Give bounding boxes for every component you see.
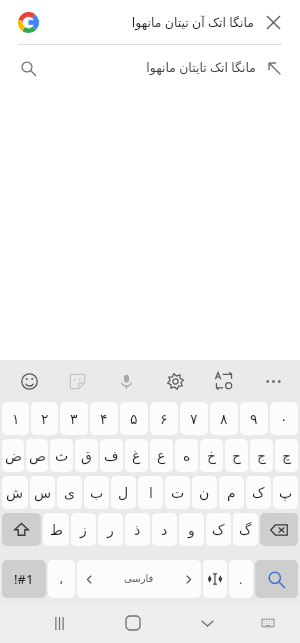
- button[interactable]: ر: [98, 513, 123, 546]
- button[interactable]: ح: [225, 439, 248, 472]
- staticText: .: [239, 570, 243, 588]
- staticText: س: [34, 485, 52, 501]
- button[interactable]: ۷: [180, 402, 208, 435]
- button[interactable]: ز: [71, 513, 96, 546]
- staticText: ر: [107, 522, 114, 538]
- button[interactable]: ۴: [90, 402, 118, 435]
- staticText: ح: [232, 448, 242, 464]
- button[interactable]: ۵: [120, 402, 148, 435]
- staticText: م: [227, 485, 236, 501]
- button[interactable]: ۸: [210, 402, 238, 435]
- staticText: چ: [282, 448, 292, 464]
- staticText: ج: [257, 448, 267, 464]
- button[interactable]: Space: [77, 560, 201, 598]
- staticText: ن: [199, 485, 210, 501]
- staticText: ل: [118, 485, 129, 501]
- button[interactable]: ۹: [240, 402, 268, 435]
- button[interactable]: Cursor control: [203, 560, 227, 598]
- button[interactable]: ۶: [150, 402, 178, 435]
- staticText: ص: [29, 448, 46, 464]
- staticText: ف: [104, 448, 119, 464]
- staticText: ق: [81, 448, 92, 464]
- button[interactable]: Translate: [209, 366, 239, 396]
- button[interactable]: م: [219, 476, 244, 509]
- staticText: غ: [132, 448, 141, 464]
- staticText: ک: [212, 522, 225, 538]
- button[interactable]: Period: [229, 560, 253, 598]
- button[interactable]: ص: [26, 439, 48, 472]
- button[interactable]: س: [30, 476, 55, 509]
- staticText: ا: [149, 485, 153, 501]
- button[interactable]: Stickers: [62, 366, 92, 396]
- button[interactable]: ن: [192, 476, 217, 509]
- staticText: ز: [80, 522, 87, 538]
- button[interactable]: Clear query: [258, 7, 288, 37]
- staticText: خ: [207, 448, 217, 464]
- button[interactable]: گ: [233, 513, 258, 546]
- button[interactable]: ج: [250, 439, 273, 472]
- staticText: ع: [157, 448, 166, 464]
- button[interactable]: ش: [2, 476, 28, 509]
- button[interactable]: ه: [175, 439, 198, 472]
- staticText: د: [161, 522, 168, 538]
- button[interactable]: Settings: [160, 366, 190, 396]
- button[interactable]: ت: [165, 476, 190, 509]
- button[interactable]: Hide keyboard: [190, 606, 224, 640]
- button[interactable]: !#1: [2, 560, 46, 598]
- button[interactable]: ع: [150, 439, 173, 472]
- button[interactable]: مانگا اتک تایتان مانهوا: [0, 45, 300, 90]
- button[interactable]: پ: [273, 476, 298, 509]
- button[interactable]: Home: [116, 606, 150, 640]
- button[interactable]: غ: [125, 439, 148, 472]
- button[interactable]: Backspace: [260, 513, 298, 546]
- staticText: ذ: [134, 522, 141, 538]
- button[interactable]: ض: [2, 439, 24, 472]
- button[interactable]: ل: [111, 476, 136, 509]
- button[interactable]: Voice input: [111, 366, 141, 396]
- button[interactable]: ف: [100, 439, 123, 472]
- staticText: ث: [55, 448, 69, 464]
- button[interactable]: ۰: [270, 402, 298, 435]
- button[interactable]: و: [179, 513, 204, 546]
- button[interactable]: Insert suggestion: [260, 54, 288, 82]
- button[interactable]: Recent apps: [42, 606, 76, 640]
- staticText: مانگا اتک تایتان مانهوا: [146, 59, 256, 76]
- staticText: ۰: [280, 411, 288, 427]
- button[interactable]: Comma: [48, 560, 75, 598]
- button[interactable]: ک: [246, 476, 271, 509]
- staticText: ت: [171, 485, 185, 501]
- staticText: ۸: [220, 411, 228, 427]
- staticText: ۲: [41, 411, 49, 427]
- staticText: ط: [50, 522, 63, 538]
- staticText: ۹: [250, 411, 258, 427]
- button[interactable]: خ: [200, 439, 223, 472]
- button[interactable]: ۲: [31, 402, 58, 435]
- button[interactable]: Shift: [2, 513, 41, 546]
- staticText: گ: [239, 522, 252, 538]
- button[interactable]: ث: [50, 439, 73, 472]
- button[interactable]: ا: [138, 476, 163, 509]
- button[interactable]: Emoji: [14, 366, 44, 396]
- button[interactable]: Search: [255, 560, 298, 598]
- staticText: ه: [183, 448, 191, 464]
- button[interactable]: More options: [258, 366, 288, 396]
- button[interactable]: ۳: [60, 402, 88, 435]
- button[interactable]: ی: [57, 476, 82, 509]
- staticText: ب: [90, 485, 104, 501]
- button[interactable]: د: [152, 513, 177, 546]
- button[interactable]: ق: [75, 439, 98, 472]
- staticText: ض: [5, 448, 22, 464]
- button[interactable]: Google: [14, 8, 42, 36]
- button[interactable]: ب: [84, 476, 109, 509]
- staticText: ۵: [130, 411, 138, 427]
- button[interactable]: ذ: [125, 513, 150, 546]
- staticText: ،: [59, 572, 64, 587]
- button[interactable]: چ: [275, 439, 298, 472]
- staticText: !#1: [14, 570, 34, 588]
- staticText: ش: [6, 485, 24, 501]
- button[interactable]: Keyboard layout: [254, 609, 282, 637]
- button[interactable]: ک: [206, 513, 231, 546]
- button[interactable]: ط: [43, 513, 69, 546]
- staticText: فارسی: [124, 573, 154, 585]
- button[interactable]: ۱: [2, 402, 29, 435]
